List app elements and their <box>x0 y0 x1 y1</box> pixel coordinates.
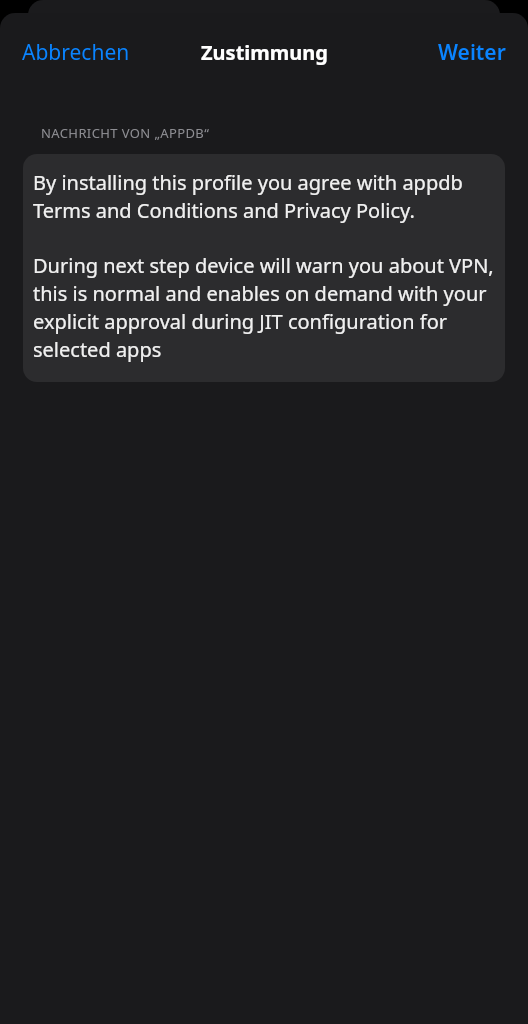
staticText: NACHRICHT VON „APPDB“ <box>41 124 210 142</box>
staticText: Weiter <box>438 38 506 67</box>
staticText: During next step device will warn you ab… <box>33 252 495 363</box>
button[interactable]: Weiter <box>425 29 519 76</box>
button[interactable]: By installing this profile you agree wit… <box>23 154 505 382</box>
button[interactable]: Abbrechen <box>9 29 143 76</box>
staticText: Abbrechen <box>22 38 130 67</box>
staticText: By installing this profile you agree wit… <box>33 169 495 224</box>
staticText: Zustimmung <box>201 39 328 66</box>
